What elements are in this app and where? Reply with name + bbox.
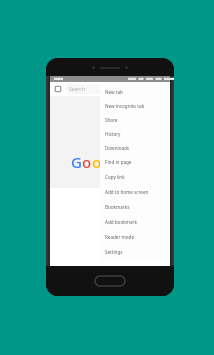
staticText: Share: [105, 117, 118, 123]
staticText: Downloads: [105, 145, 130, 151]
staticText: Settings: [105, 249, 123, 255]
button[interactable]: Find in page: [100, 155, 170, 169]
button[interactable]: Copy link: [100, 169, 170, 184]
staticText: New incognito tab: [105, 103, 145, 109]
staticText: New tab: [105, 89, 123, 95]
staticText: e: [117, 152, 126, 172]
button[interactable]: History: [100, 127, 170, 141]
button[interactable]: Downloads: [100, 141, 170, 155]
button[interactable]: Settings: [100, 244, 170, 259]
button[interactable]: Search: [66, 84, 166, 94]
staticText: Add bookmark: [105, 219, 137, 225]
staticText: Find in page: [105, 159, 132, 165]
button[interactable]: New tab: [100, 85, 170, 99]
button[interactable]: Tabs: [54, 85, 62, 93]
staticText: Bookmarks: [105, 204, 130, 210]
staticText: Search: [69, 86, 85, 93]
button[interactable]: Reader mode: [100, 229, 170, 244]
staticText: G: [71, 152, 82, 172]
staticText: Reader mode: [105, 234, 135, 240]
button[interactable]: Bookmarks: [100, 199, 170, 214]
staticText: Add to home screen: [105, 189, 149, 195]
staticText: l: [112, 152, 117, 172]
staticText: o: [92, 152, 102, 172]
staticText: g: [102, 152, 112, 172]
button[interactable]: Share: [100, 113, 170, 127]
staticText: History: [105, 131, 121, 137]
staticText: o: [82, 152, 92, 172]
button[interactable]: Add to home screen: [100, 184, 170, 199]
button[interactable]: New incognito tab: [100, 99, 170, 113]
button[interactable]: Add bookmark: [100, 214, 170, 229]
staticText: Copy link: [105, 174, 125, 180]
button[interactable]: Home: [95, 276, 125, 286]
